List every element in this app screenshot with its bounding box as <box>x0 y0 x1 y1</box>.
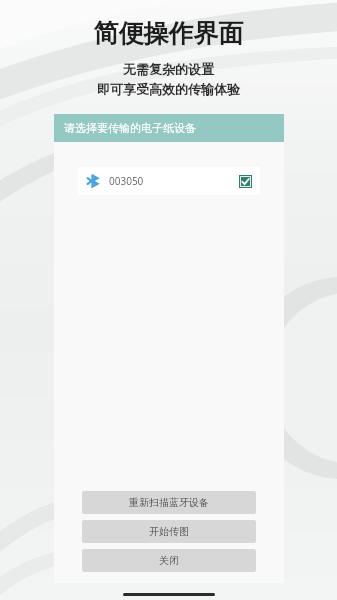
staticText: 关闭 <box>159 554 179 567</box>
staticText: 开始传图 <box>149 525 189 538</box>
staticText: 无需复杂的设置 <box>0 61 337 77</box>
button[interactable]: 开始传图 <box>82 520 256 543</box>
staticText: 重新扫描蓝牙设备 <box>129 496 209 509</box>
button[interactable]: Bluetooth <box>78 167 260 195</box>
other: Selected <box>239 175 252 188</box>
staticText: 简便操作界面 <box>0 18 337 49</box>
staticText: 请选择要传输的电子纸设备 <box>64 121 196 135</box>
button[interactable]: 关闭 <box>82 549 256 572</box>
button[interactable]: 重新扫描蓝牙设备 <box>82 491 256 514</box>
staticText: 即可享受高效的传输体验 <box>0 81 337 97</box>
other: Bluetooth <box>86 174 100 188</box>
staticText: 003050 <box>109 174 144 188</box>
